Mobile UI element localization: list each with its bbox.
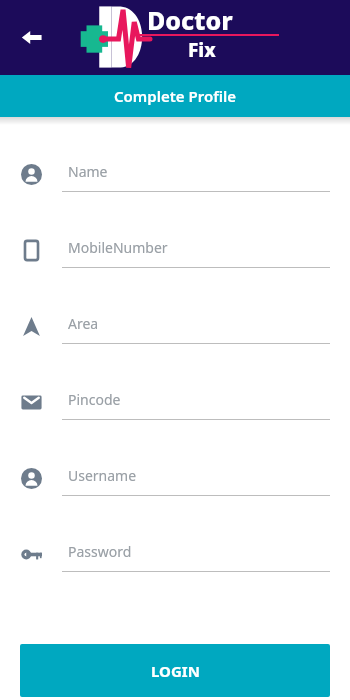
button[interactable]: Complete Profile <box>0 75 350 117</box>
staticText: Fix <box>188 37 216 63</box>
button[interactable]: MobileNumber <box>0 228 350 304</box>
button[interactable]: Password <box>0 532 350 608</box>
button[interactable]: Area <box>0 304 350 380</box>
button[interactable]: Back <box>11 17 51 57</box>
staticText: MobileNumber <box>68 238 168 257</box>
button[interactable]: Name <box>0 152 350 228</box>
staticText: LOGIN <box>151 661 200 681</box>
staticText: Name <box>68 162 108 181</box>
staticText: Doctor <box>147 3 233 37</box>
staticText: Area <box>68 314 99 333</box>
staticText: Complete Profile <box>114 86 236 106</box>
button[interactable]: LOGIN <box>20 644 330 697</box>
staticText: Password <box>68 542 132 561</box>
staticText: Username <box>68 466 137 485</box>
staticText: Pincode <box>68 390 121 409</box>
button[interactable]: Username <box>0 456 350 532</box>
button[interactable]: Pincode <box>0 380 350 456</box>
